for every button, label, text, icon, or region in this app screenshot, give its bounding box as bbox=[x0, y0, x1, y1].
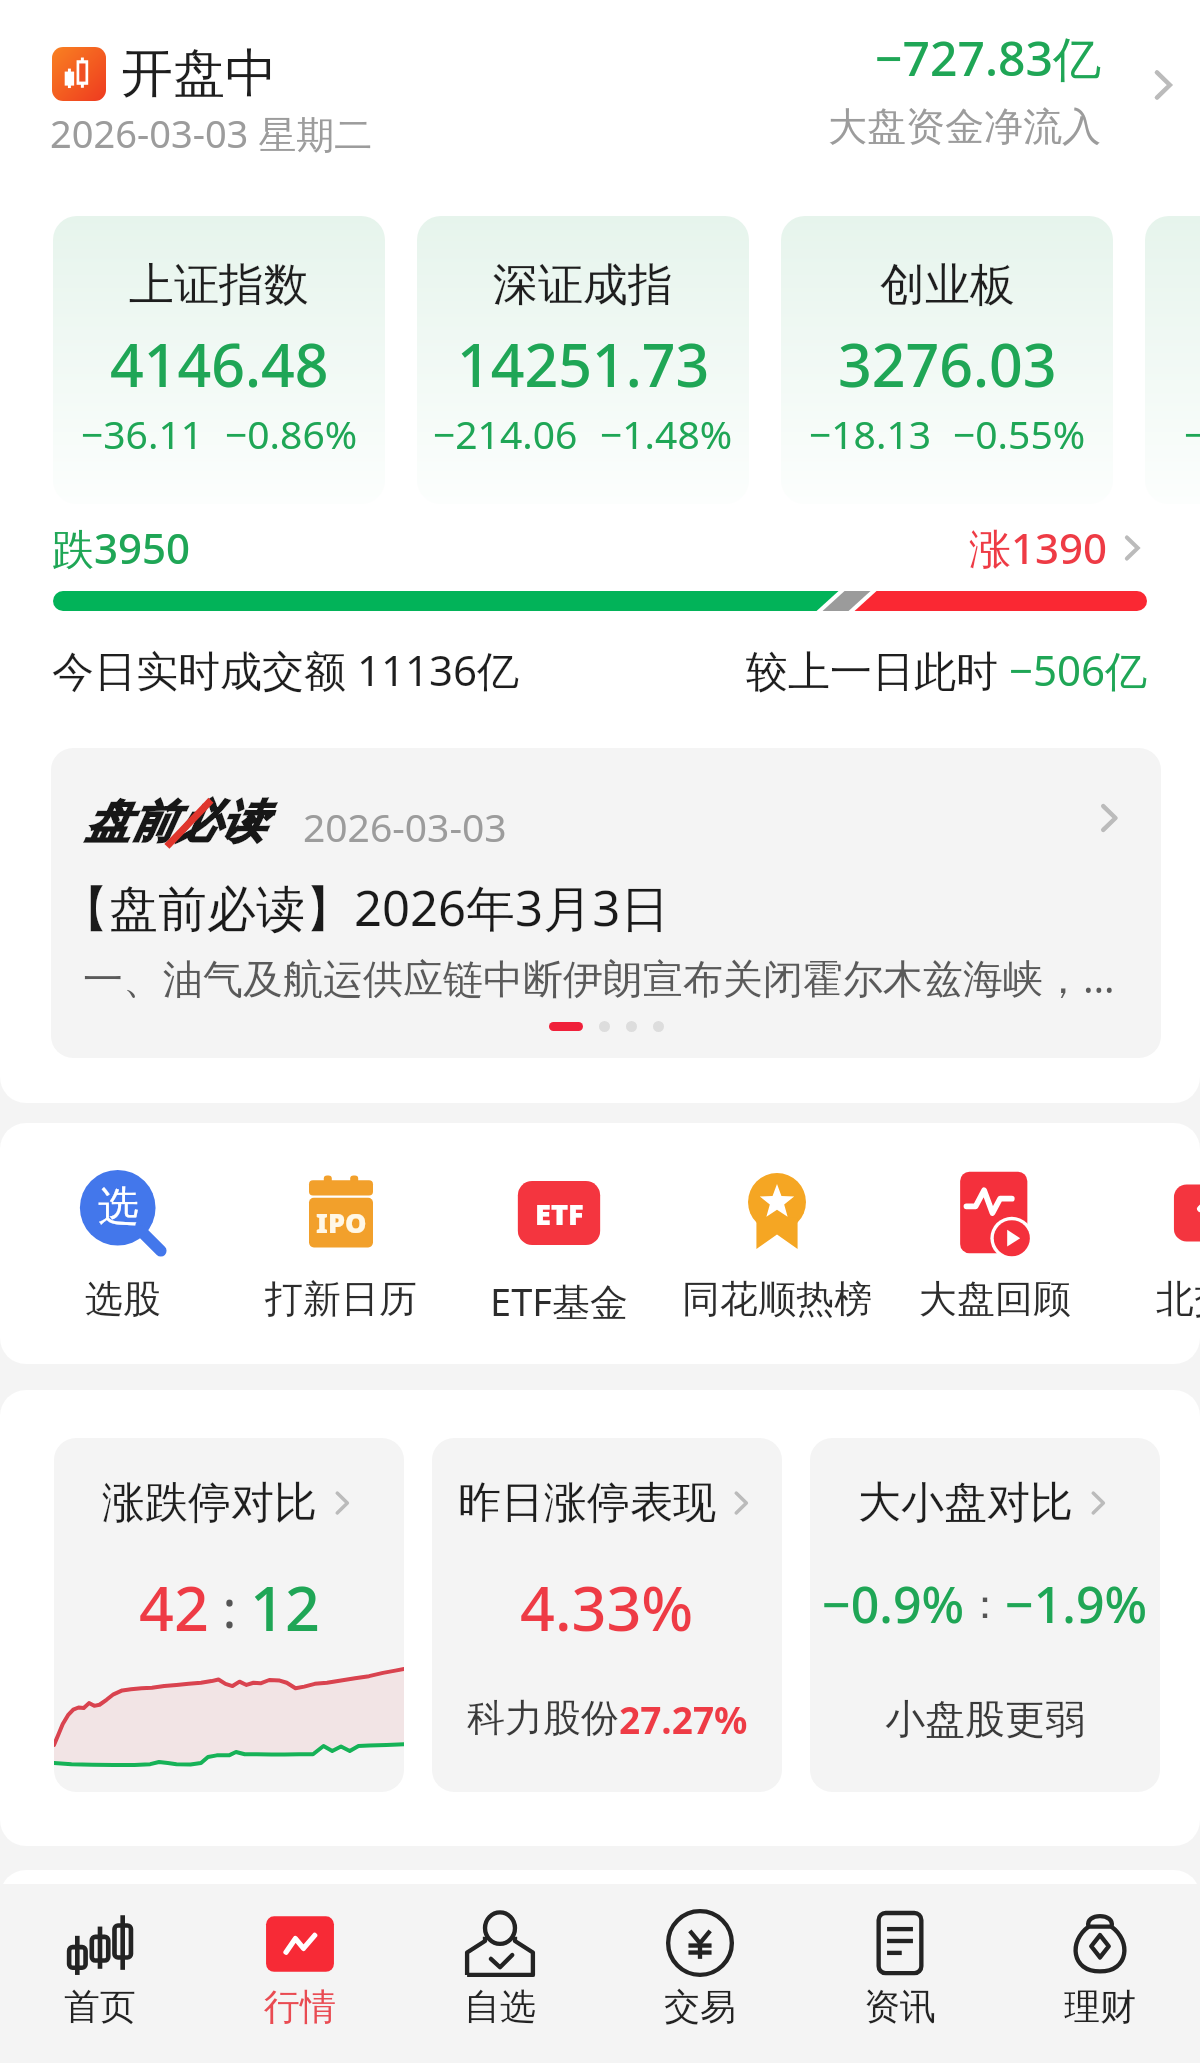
button[interactable]: 资讯 bbox=[800, 1884, 1000, 2063]
staticText: −0.86% bbox=[225, 407, 358, 460]
staticText: −0.55% bbox=[953, 407, 1086, 460]
staticText: 27.27% bbox=[619, 1694, 748, 1744]
staticText: 小盘股更弱 bbox=[885, 1694, 1085, 1744]
staticText: 深证成指 bbox=[493, 257, 673, 314]
staticText: −8.13 bbox=[1184, 407, 1200, 460]
button[interactable]: 深证成指 bbox=[417, 216, 749, 504]
staticText: 首页 bbox=[64, 1984, 136, 2029]
staticText: 14251.73 bbox=[457, 324, 710, 404]
button[interactable]: 盘前必读 bbox=[51, 748, 1161, 1058]
staticText: 选 bbox=[98, 1181, 139, 1233]
button[interactable]: 首页 bbox=[0, 1884, 200, 2063]
staticText: 4.33% bbox=[520, 1566, 694, 1649]
button[interactable]: 大盘资金净流入 bbox=[840, 0, 1200, 160]
button[interactable]: 跌3950 bbox=[52, 519, 1148, 576]
staticText: 42 bbox=[139, 1566, 209, 1649]
staticText: −214.06 bbox=[433, 407, 578, 460]
staticText: 3276.03 bbox=[838, 324, 1057, 404]
staticText: 大小盘对比 bbox=[858, 1476, 1073, 1530]
staticText: 涨跌停对比 bbox=[102, 1476, 317, 1530]
staticText: 同花顺热榜 bbox=[682, 1275, 872, 1323]
button[interactable]: 大盘回顾 bbox=[886, 1123, 1104, 1364]
button[interactable]: 大小盘对比 bbox=[810, 1438, 1160, 1792]
staticText: 选股 bbox=[85, 1275, 161, 1323]
button[interactable]: 北交所 bbox=[1104, 1123, 1200, 1364]
staticText: ETF bbox=[535, 1194, 584, 1233]
staticText: ： bbox=[965, 1579, 1005, 1629]
staticText: −1.9% bbox=[1005, 1570, 1148, 1638]
staticText: −18.13 bbox=[809, 407, 931, 460]
button[interactable]: 交易 bbox=[600, 1884, 800, 2063]
staticText: 昨日涨停表现 bbox=[458, 1476, 716, 1530]
button[interactable]: ETF bbox=[450, 1123, 668, 1364]
button[interactable]: 创业板 bbox=[781, 216, 1113, 504]
staticText: 开盘中 bbox=[121, 41, 277, 107]
staticText: 科力股份 bbox=[467, 1694, 619, 1742]
button[interactable]: 科创50 bbox=[1145, 216, 1200, 504]
staticText: −727.83亿 bbox=[875, 25, 1101, 91]
staticText: 2026-03-03 星期二 bbox=[50, 107, 373, 159]
staticText: 【盘前必读】2026年3月3日 bbox=[60, 874, 670, 941]
button[interactable]: 涨跌停对比 bbox=[54, 1438, 404, 1792]
staticText: −1.48% bbox=[600, 407, 733, 460]
staticText: 创业板 bbox=[880, 257, 1015, 314]
staticText: 跌3950 bbox=[52, 519, 191, 576]
staticText: 较上一日此时 bbox=[746, 641, 1009, 698]
staticText: 大盘资金净流入 bbox=[828, 102, 1101, 151]
staticText: 2026-03-03 bbox=[303, 800, 507, 853]
staticText: 4146.48 bbox=[110, 324, 329, 404]
staticText: ETF基金 bbox=[490, 1275, 628, 1327]
staticText: 今日实时成交额 11136亿 bbox=[52, 641, 520, 698]
staticText: 涨1390 bbox=[969, 519, 1108, 576]
staticText: 行情 bbox=[264, 1984, 336, 2029]
button[interactable]: 同花顺热榜 bbox=[668, 1123, 886, 1364]
staticText: 交易 bbox=[664, 1984, 736, 2029]
staticText: −36.11 bbox=[81, 407, 203, 460]
button[interactable]: 行情 bbox=[200, 1884, 400, 2063]
staticText: 北交所 bbox=[1156, 1275, 1200, 1323]
staticText: 大盘回顾 bbox=[919, 1275, 1071, 1323]
staticText: : bbox=[209, 1572, 250, 1643]
staticText: 一、油气及航运供应链中断伊朗宣布关闭霍尔木兹海峡，… bbox=[83, 950, 1115, 1005]
button[interactable]: 自选 bbox=[400, 1884, 600, 2063]
staticText: IPO bbox=[316, 1204, 367, 1241]
staticText: 理财 bbox=[1064, 1984, 1136, 2029]
button[interactable]: 选 bbox=[14, 1123, 232, 1364]
staticText: 盘前必读 bbox=[85, 794, 265, 851]
staticText: 资讯 bbox=[864, 1984, 936, 2029]
staticText: −506亿 bbox=[1009, 641, 1148, 698]
staticText: 自选 bbox=[464, 1984, 536, 2029]
staticText: −0.9% bbox=[822, 1570, 965, 1638]
staticText: 上证指数 bbox=[129, 257, 309, 314]
button[interactable]: 理财 bbox=[1000, 1884, 1200, 2063]
staticText: 打新日历 bbox=[265, 1275, 417, 1323]
button[interactable]: IPO bbox=[232, 1123, 450, 1364]
staticText: 12 bbox=[250, 1566, 320, 1649]
button[interactable]: 昨日涨停表现 bbox=[432, 1438, 782, 1792]
button[interactable]: 上证指数 bbox=[53, 216, 385, 504]
